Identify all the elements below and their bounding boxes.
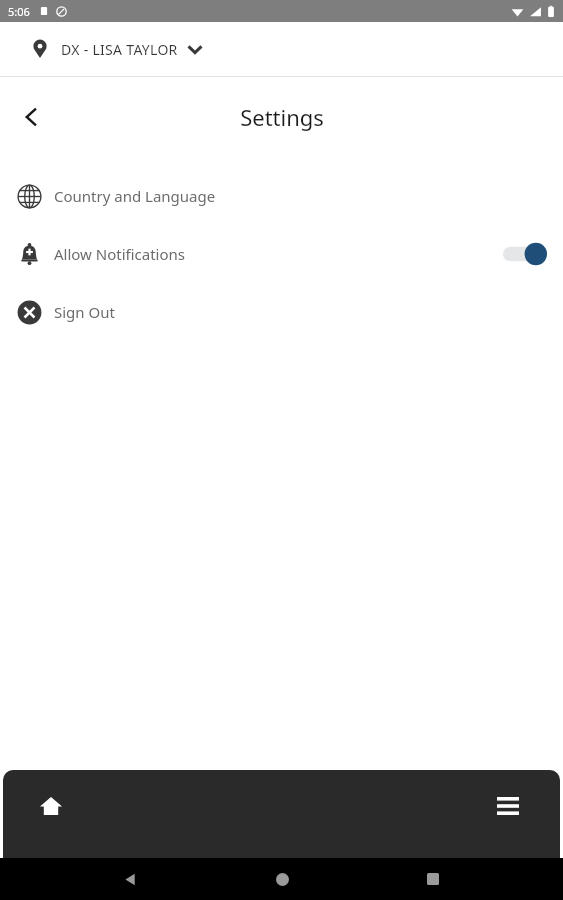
button[interactable]: Back (10, 95, 54, 139)
staticText: 5:06 (8, 4, 30, 19)
button[interactable]: Home (29, 784, 73, 828)
staticText: Allow Notifications (54, 244, 186, 264)
button[interactable]: Recent apps (412, 858, 454, 900)
button[interactable]: Home (261, 858, 303, 900)
button[interactable]: Sign Out (0, 283, 563, 341)
staticText: Settings (240, 102, 324, 132)
button[interactable]: Allow Notifications toggle (503, 240, 547, 268)
button[interactable]: Menu (486, 784, 530, 828)
button[interactable]: Allow Notifications (0, 225, 563, 283)
button[interactable]: Back (109, 858, 151, 900)
button[interactable]: Country and Language (0, 167, 563, 225)
staticText: Sign Out (54, 302, 115, 322)
staticText: Country and Language (54, 186, 216, 206)
staticText: DX - LISA TAYLOR (61, 40, 178, 59)
button[interactable]: DX - LISA TAYLOR (0, 22, 563, 76)
